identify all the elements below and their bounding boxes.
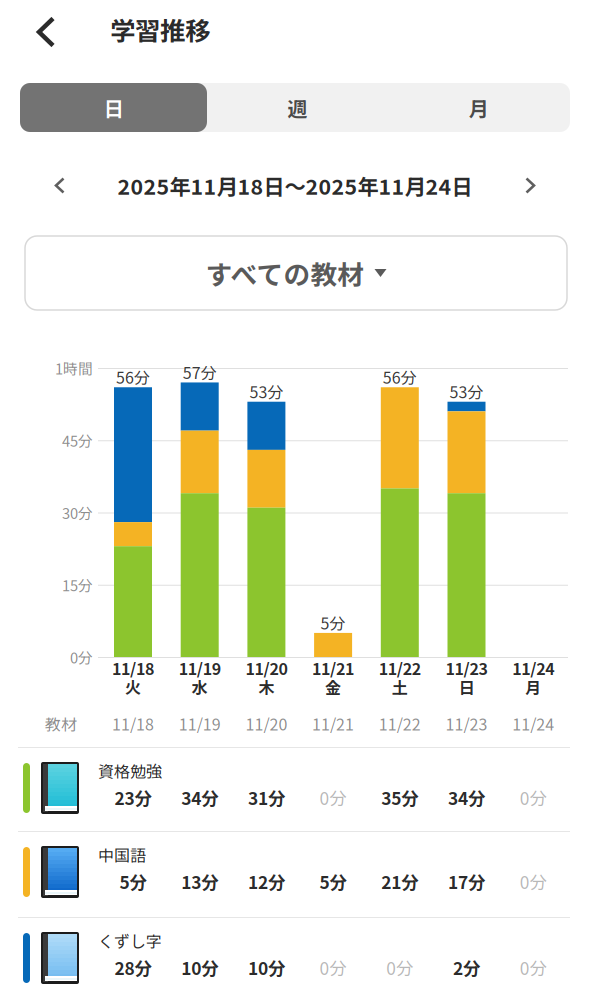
staticText: 10分	[181, 955, 218, 980]
staticText: 水	[192, 675, 208, 699]
staticText: 日	[103, 93, 123, 122]
staticText: 5分	[321, 611, 346, 634]
staticText: 月	[525, 675, 541, 699]
staticText: 11/21	[312, 712, 354, 735]
staticText: 17分	[448, 869, 485, 894]
staticText: 11/19	[179, 712, 221, 735]
staticText: 木	[258, 675, 274, 699]
button[interactable]: Previous period	[41, 164, 79, 207]
staticText: 28分	[114, 955, 151, 980]
staticText: 中国語	[98, 843, 146, 866]
button[interactable]: すべての教材	[25, 236, 567, 310]
staticText: 53分	[449, 380, 483, 403]
staticText: 30分	[62, 502, 93, 523]
staticText: 34分	[181, 785, 218, 810]
staticText: 53分	[249, 380, 283, 403]
staticText: 56分	[383, 365, 417, 388]
staticText: 12分	[248, 869, 285, 894]
staticText: 0分	[520, 955, 547, 980]
staticText: 11/18	[112, 712, 154, 735]
staticText: 11/24	[512, 712, 554, 735]
staticText: 13分	[181, 869, 218, 894]
staticText: 0分	[386, 955, 413, 980]
button[interactable]: Next period	[511, 164, 549, 207]
staticText: 1時間	[55, 357, 93, 379]
staticText: 資格勉強	[98, 759, 162, 782]
staticText: 0分	[70, 646, 93, 668]
staticText: 5分	[119, 869, 146, 894]
staticText: 11/23	[445, 656, 487, 680]
button[interactable]: 日	[20, 83, 207, 132]
staticText: 11/22	[379, 656, 421, 680]
staticText: 11/22	[379, 712, 421, 735]
staticText: 週	[287, 93, 307, 122]
staticText: 11/23	[445, 712, 487, 735]
staticText: 15分	[62, 574, 93, 595]
button[interactable]: 月	[388, 83, 570, 132]
staticText: 23分	[114, 785, 151, 810]
staticText: 45分	[62, 430, 93, 451]
staticText: 0分	[320, 785, 347, 810]
staticText: 34分	[448, 785, 485, 810]
staticText: 5分	[320, 869, 347, 894]
staticText: 11/18	[112, 656, 154, 680]
staticText: 2025年11月18日〜2025年11月24日	[117, 170, 472, 201]
staticText: 火	[125, 675, 141, 699]
staticText: くずし字	[98, 929, 162, 952]
staticText: すべての教材	[205, 254, 364, 292]
staticText: 0分	[520, 785, 547, 810]
button[interactable]: 週	[207, 83, 388, 132]
staticText: 0分	[520, 869, 547, 894]
staticText: 0分	[320, 955, 347, 980]
staticText: 31分	[248, 785, 285, 810]
staticText: 11/24	[512, 656, 554, 680]
staticText: 21分	[381, 869, 418, 894]
staticText: 11/21	[312, 656, 354, 680]
staticText: 土	[392, 675, 408, 699]
staticText: 11/20	[245, 712, 287, 735]
staticText: 11/19	[179, 656, 221, 680]
staticText: 57分	[183, 360, 217, 384]
button[interactable]: Back	[24, 4, 68, 60]
staticText: 日	[458, 675, 474, 699]
staticText: 10分	[248, 955, 285, 980]
staticText: 56分	[116, 365, 150, 388]
staticText: 教材	[45, 712, 77, 735]
staticText: 11/20	[245, 656, 287, 680]
staticText: 35分	[381, 785, 418, 810]
staticText: 学習推移	[110, 11, 210, 48]
staticText: 2分	[453, 955, 480, 980]
staticText: 金	[325, 675, 341, 699]
staticText: 月	[469, 93, 489, 122]
